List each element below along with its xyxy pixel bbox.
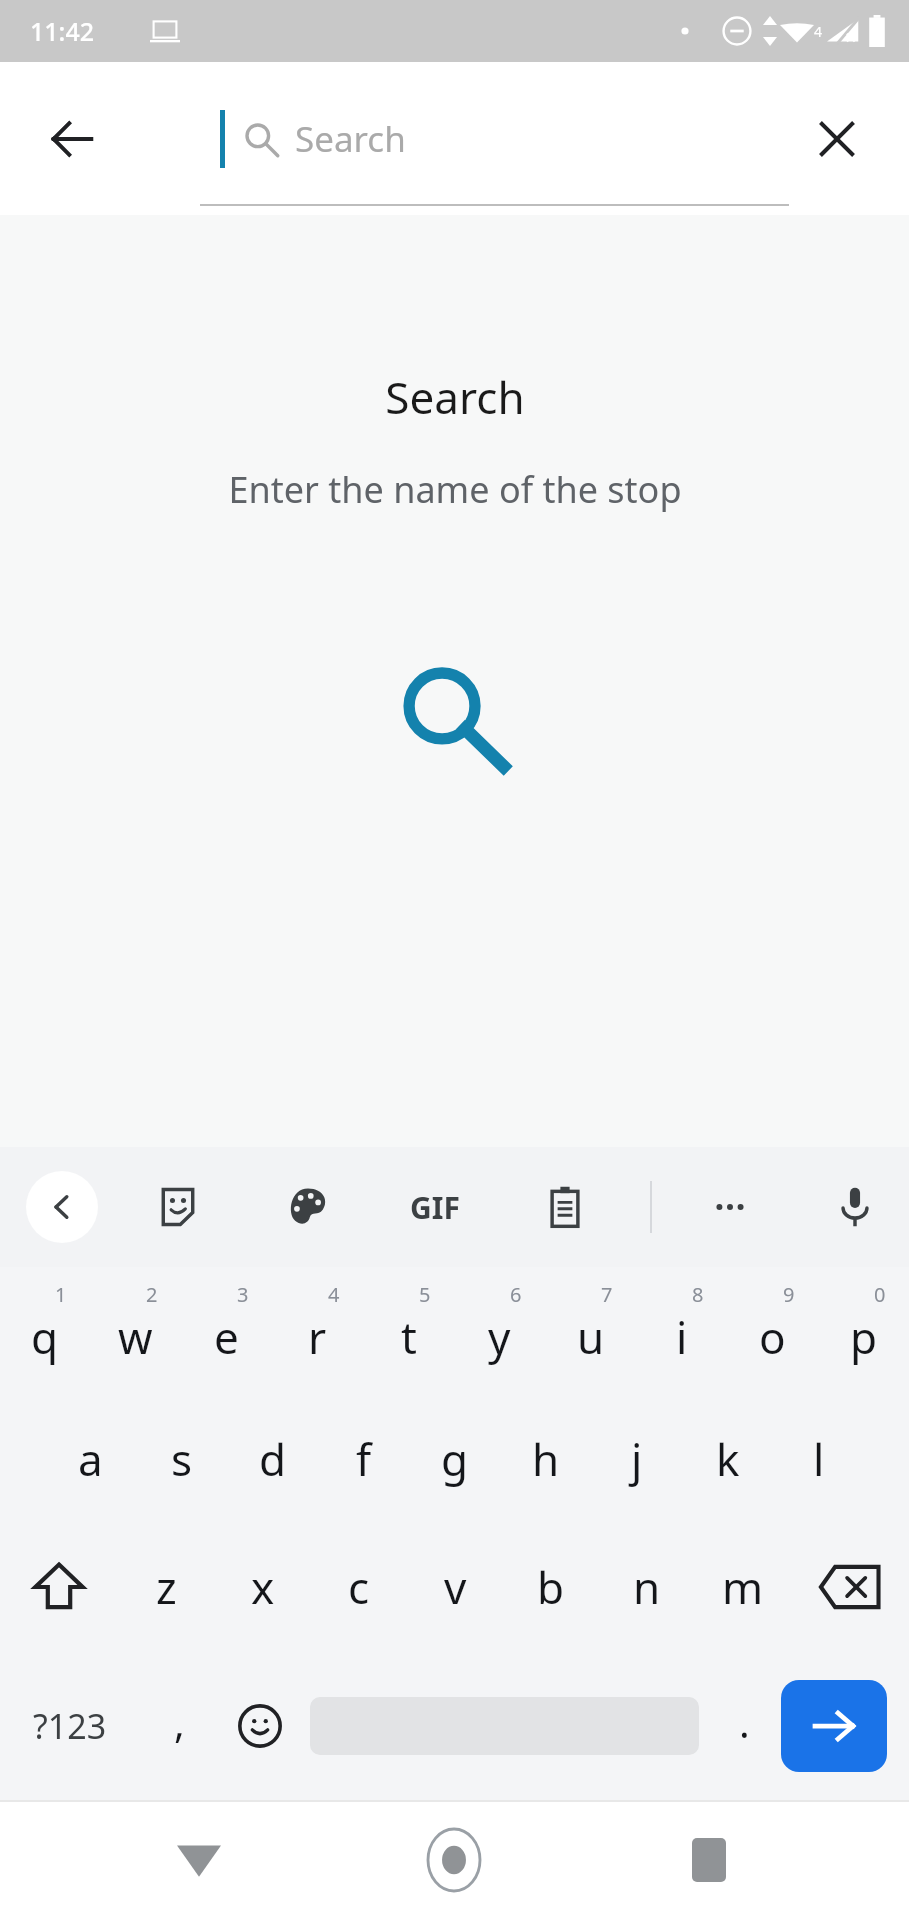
button[interactable]: Home xyxy=(399,1805,509,1915)
staticText: 2 xyxy=(146,1281,158,1308)
button[interactable]: . xyxy=(707,1651,781,1800)
staticText: y xyxy=(488,1307,511,1367)
staticText: 9 xyxy=(783,1281,795,1308)
button[interactable]: g xyxy=(409,1395,500,1523)
staticText: f xyxy=(356,1429,372,1489)
staticText: c xyxy=(348,1557,370,1617)
button[interactable]: Emoji xyxy=(218,1651,302,1800)
staticText: Enter the name of the stop xyxy=(228,465,682,514)
staticText: o xyxy=(759,1307,786,1367)
staticText: u xyxy=(577,1307,605,1367)
staticText: h xyxy=(532,1429,560,1489)
button[interactable]: Back xyxy=(144,1805,254,1915)
staticText: Search xyxy=(385,367,525,427)
button[interactable]: s xyxy=(136,1395,227,1523)
staticText: 6 xyxy=(510,1281,522,1308)
button[interactable]: c xyxy=(311,1523,407,1651)
button[interactable]: Themes xyxy=(272,1171,344,1243)
button[interactable]: Backspace xyxy=(791,1523,909,1651)
button[interactable]: n xyxy=(599,1523,695,1651)
button[interactable]: 6 xyxy=(454,1267,545,1395)
staticText: 4 xyxy=(814,22,823,41)
staticText: 1 xyxy=(55,1281,67,1308)
staticText: z xyxy=(156,1557,177,1617)
button[interactable]: 2 xyxy=(90,1267,181,1395)
staticText: 7 xyxy=(601,1281,613,1308)
button[interactable]: Stickers xyxy=(142,1171,214,1243)
button[interactable]: Shift xyxy=(0,1523,118,1651)
button[interactable]: 4 xyxy=(272,1267,363,1395)
staticText: 5 xyxy=(419,1281,431,1308)
button[interactable]: a xyxy=(45,1395,136,1523)
staticText: 11:42 xyxy=(30,14,95,48)
staticText: x xyxy=(251,1557,275,1617)
button[interactable]: Voice input xyxy=(819,1171,891,1243)
staticText: a xyxy=(78,1429,103,1489)
staticText: k xyxy=(716,1429,740,1489)
staticText: 0 xyxy=(874,1281,886,1308)
button[interactable]: f xyxy=(318,1395,409,1523)
staticText: e xyxy=(214,1307,239,1367)
staticText: q xyxy=(31,1307,59,1367)
button[interactable]: Search xyxy=(200,62,789,215)
button[interactable]: Clear search xyxy=(783,85,891,193)
button[interactable]: Recent apps xyxy=(654,1805,764,1915)
staticText: s xyxy=(171,1429,193,1489)
button[interactable]: j xyxy=(591,1395,682,1523)
button[interactable]: ?123 xyxy=(0,1651,140,1800)
staticText: l xyxy=(813,1429,825,1489)
staticText: t xyxy=(401,1307,417,1367)
staticText: . xyxy=(739,1695,750,1749)
button[interactable]: More options xyxy=(694,1171,766,1243)
button[interactable]: 9 xyxy=(727,1267,818,1395)
button[interactable]: 5 xyxy=(363,1267,454,1395)
staticText: d xyxy=(259,1429,287,1489)
button[interactable]: GIF xyxy=(399,1171,471,1243)
button[interactable]: 3 xyxy=(181,1267,272,1395)
staticText: ?123 xyxy=(33,1703,107,1749)
staticText: w xyxy=(118,1307,153,1367)
button[interactable]: d xyxy=(227,1395,318,1523)
button[interactable]: x xyxy=(215,1523,311,1651)
staticText: GIF xyxy=(410,1187,460,1228)
button[interactable]: 0 xyxy=(818,1267,909,1395)
button[interactable]: Back xyxy=(26,1171,98,1243)
staticText: j xyxy=(631,1429,643,1489)
staticText: g xyxy=(441,1429,469,1489)
button[interactable]: Clipboard xyxy=(529,1171,601,1243)
staticText: r xyxy=(308,1307,327,1367)
button[interactable]: 1 xyxy=(0,1267,90,1395)
button[interactable]: b xyxy=(503,1523,599,1651)
staticText: , xyxy=(174,1695,185,1749)
staticText: n xyxy=(633,1557,661,1617)
button[interactable]: k xyxy=(682,1395,773,1523)
staticText: i xyxy=(676,1307,688,1367)
button[interactable]: 7 xyxy=(545,1267,636,1395)
button[interactable]: Search xyxy=(781,1680,887,1772)
button[interactable]: m xyxy=(695,1523,791,1651)
staticText: p xyxy=(850,1307,878,1367)
staticText: m xyxy=(722,1557,764,1617)
staticText: v xyxy=(444,1557,467,1617)
button[interactable]: 8 xyxy=(636,1267,727,1395)
button[interactable]: l xyxy=(773,1395,864,1523)
staticText: 3 xyxy=(237,1281,249,1308)
button[interactable]: v xyxy=(407,1523,503,1651)
button[interactable]: , xyxy=(140,1651,218,1800)
staticText: b xyxy=(537,1557,565,1617)
button[interactable]: h xyxy=(500,1395,591,1523)
button[interactable]: z xyxy=(118,1523,215,1651)
staticText: 8 xyxy=(692,1281,704,1308)
staticText: Search xyxy=(295,115,406,163)
staticText: 4 xyxy=(328,1281,340,1308)
button[interactable]: Back xyxy=(18,85,126,193)
